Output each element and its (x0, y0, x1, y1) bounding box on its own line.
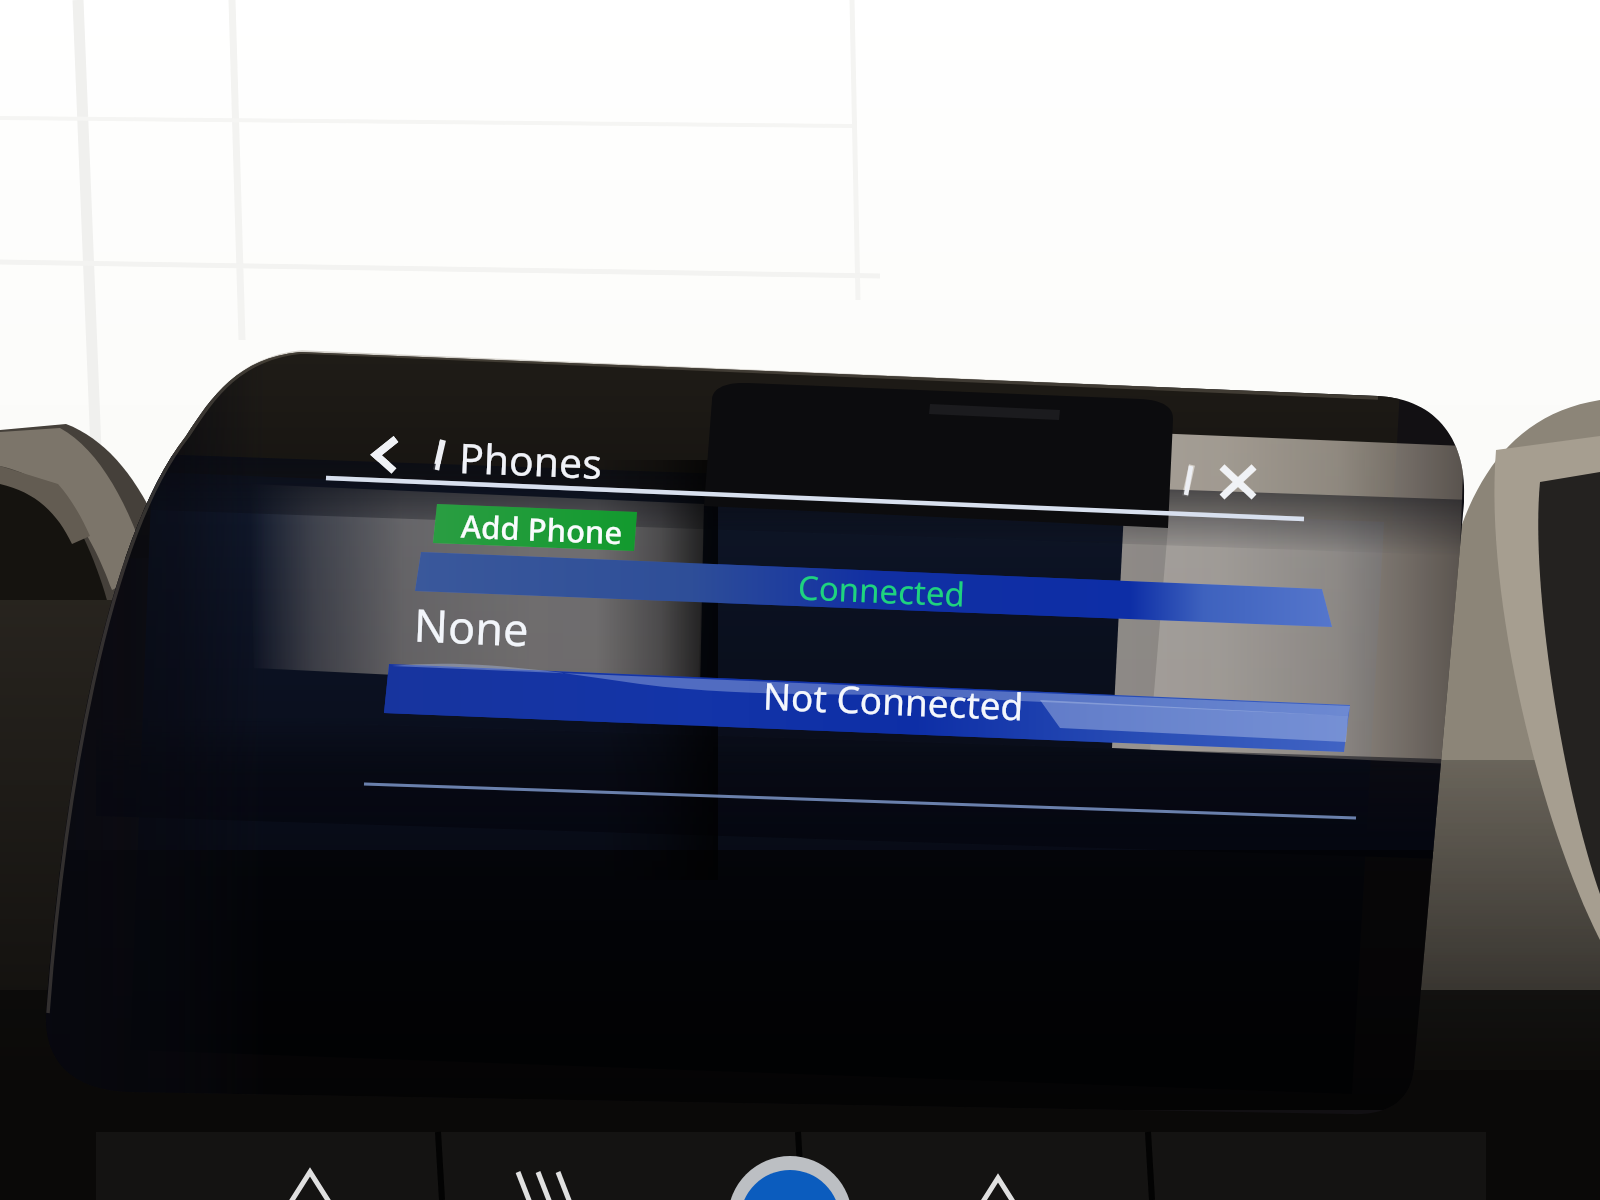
staticText: Not Connected (762, 670, 1025, 730)
button[interactable] (430, 496, 646, 556)
button[interactable]: Close (1204, 452, 1280, 510)
staticText: Phones (458, 429, 604, 491)
button[interactable] (412, 546, 1338, 634)
staticText: None (413, 594, 530, 659)
button[interactable] (384, 656, 1360, 760)
staticText: Connected (797, 564, 966, 616)
staticText: Add Phone (460, 505, 624, 553)
button[interactable]: Back (360, 428, 418, 484)
